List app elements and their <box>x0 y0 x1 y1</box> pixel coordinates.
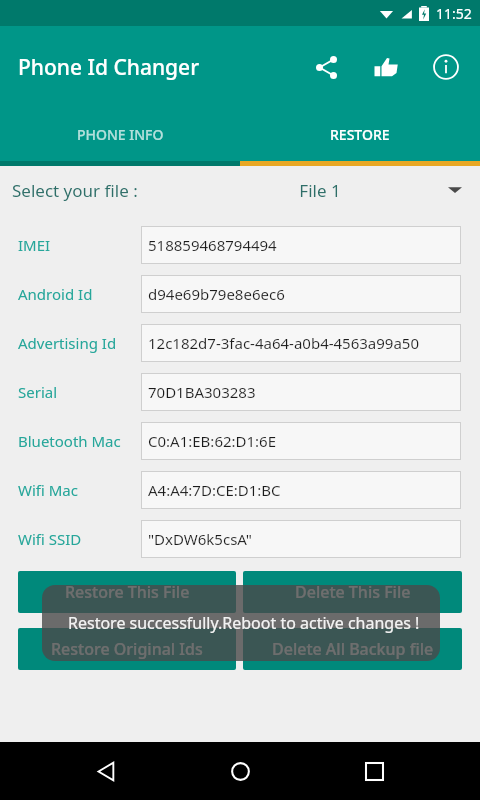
button[interactable]: Delete This File <box>243 571 462 613</box>
button[interactable]: 70D1BA303283 <box>141 373 461 411</box>
staticText: 11:52 <box>436 4 472 23</box>
staticText: Delete This File <box>295 581 411 603</box>
staticText: File 1 <box>192 179 448 202</box>
button[interactable]: File 1 <box>192 168 472 212</box>
staticText: 518859468794494 <box>148 235 277 255</box>
staticText: Serial <box>18 382 141 402</box>
staticText: RESTORE <box>330 125 390 144</box>
button[interactable]: Rate this app <box>362 43 410 91</box>
button[interactable]: Restore Original Ids <box>18 628 236 670</box>
staticText: 12c182d7-3fac-4a64-a0b4-4563a99a50 <box>148 333 420 353</box>
button[interactable]: Home <box>212 743 268 799</box>
staticText: Restore Original Ids <box>51 638 203 660</box>
staticText: Wifi SSID <box>18 529 141 549</box>
button[interactable]: Delete All Backup file <box>243 628 462 670</box>
staticText: Bluetooth Mac <box>18 431 141 451</box>
button[interactable]: Restore This File <box>18 571 236 613</box>
button[interactable]: About <box>422 43 470 91</box>
staticText: IMEI <box>18 235 141 255</box>
staticText: Phone Id Changer <box>18 53 200 82</box>
button[interactable]: "DxDW6k5csA" <box>141 520 461 558</box>
staticText: d94e69b79e8e6ec6 <box>148 284 285 304</box>
button[interactable]: 518859468794494 <box>141 226 461 264</box>
button[interactable]: PHONE INFO <box>0 108 240 161</box>
staticText: Select your file : <box>12 179 138 202</box>
button[interactable]: Share <box>302 43 350 91</box>
staticText: Android Id <box>18 284 141 304</box>
staticText: C0:A1:EB:62:D1:6E <box>148 431 277 451</box>
button[interactable]: Back <box>78 743 134 799</box>
staticText: Advertising Id <box>18 333 141 353</box>
staticText: A4:A4:7D:CE:D1:BC <box>148 480 281 500</box>
staticText: Restore successfully.Reboot to active ch… <box>68 612 420 634</box>
staticText: PHONE INFO <box>77 125 164 144</box>
staticText: Wifi Mac <box>18 480 141 500</box>
button[interactable]: C0:A1:EB:62:D1:6E <box>141 422 461 460</box>
staticText: 70D1BA303283 <box>148 382 256 402</box>
button[interactable]: 12c182d7-3fac-4a64-a0b4-4563a99a50 <box>141 324 461 362</box>
button[interactable]: d94e69b79e8e6ec6 <box>141 275 461 313</box>
staticText: Delete All Backup file <box>272 638 434 660</box>
button[interactable]: RESTORE <box>240 108 480 161</box>
staticText: Restore This File <box>65 581 190 603</box>
button[interactable]: A4:A4:7D:CE:D1:BC <box>141 471 461 509</box>
staticText: "DxDW6k5csA" <box>148 529 252 549</box>
button[interactable]: Recent apps <box>346 743 402 799</box>
